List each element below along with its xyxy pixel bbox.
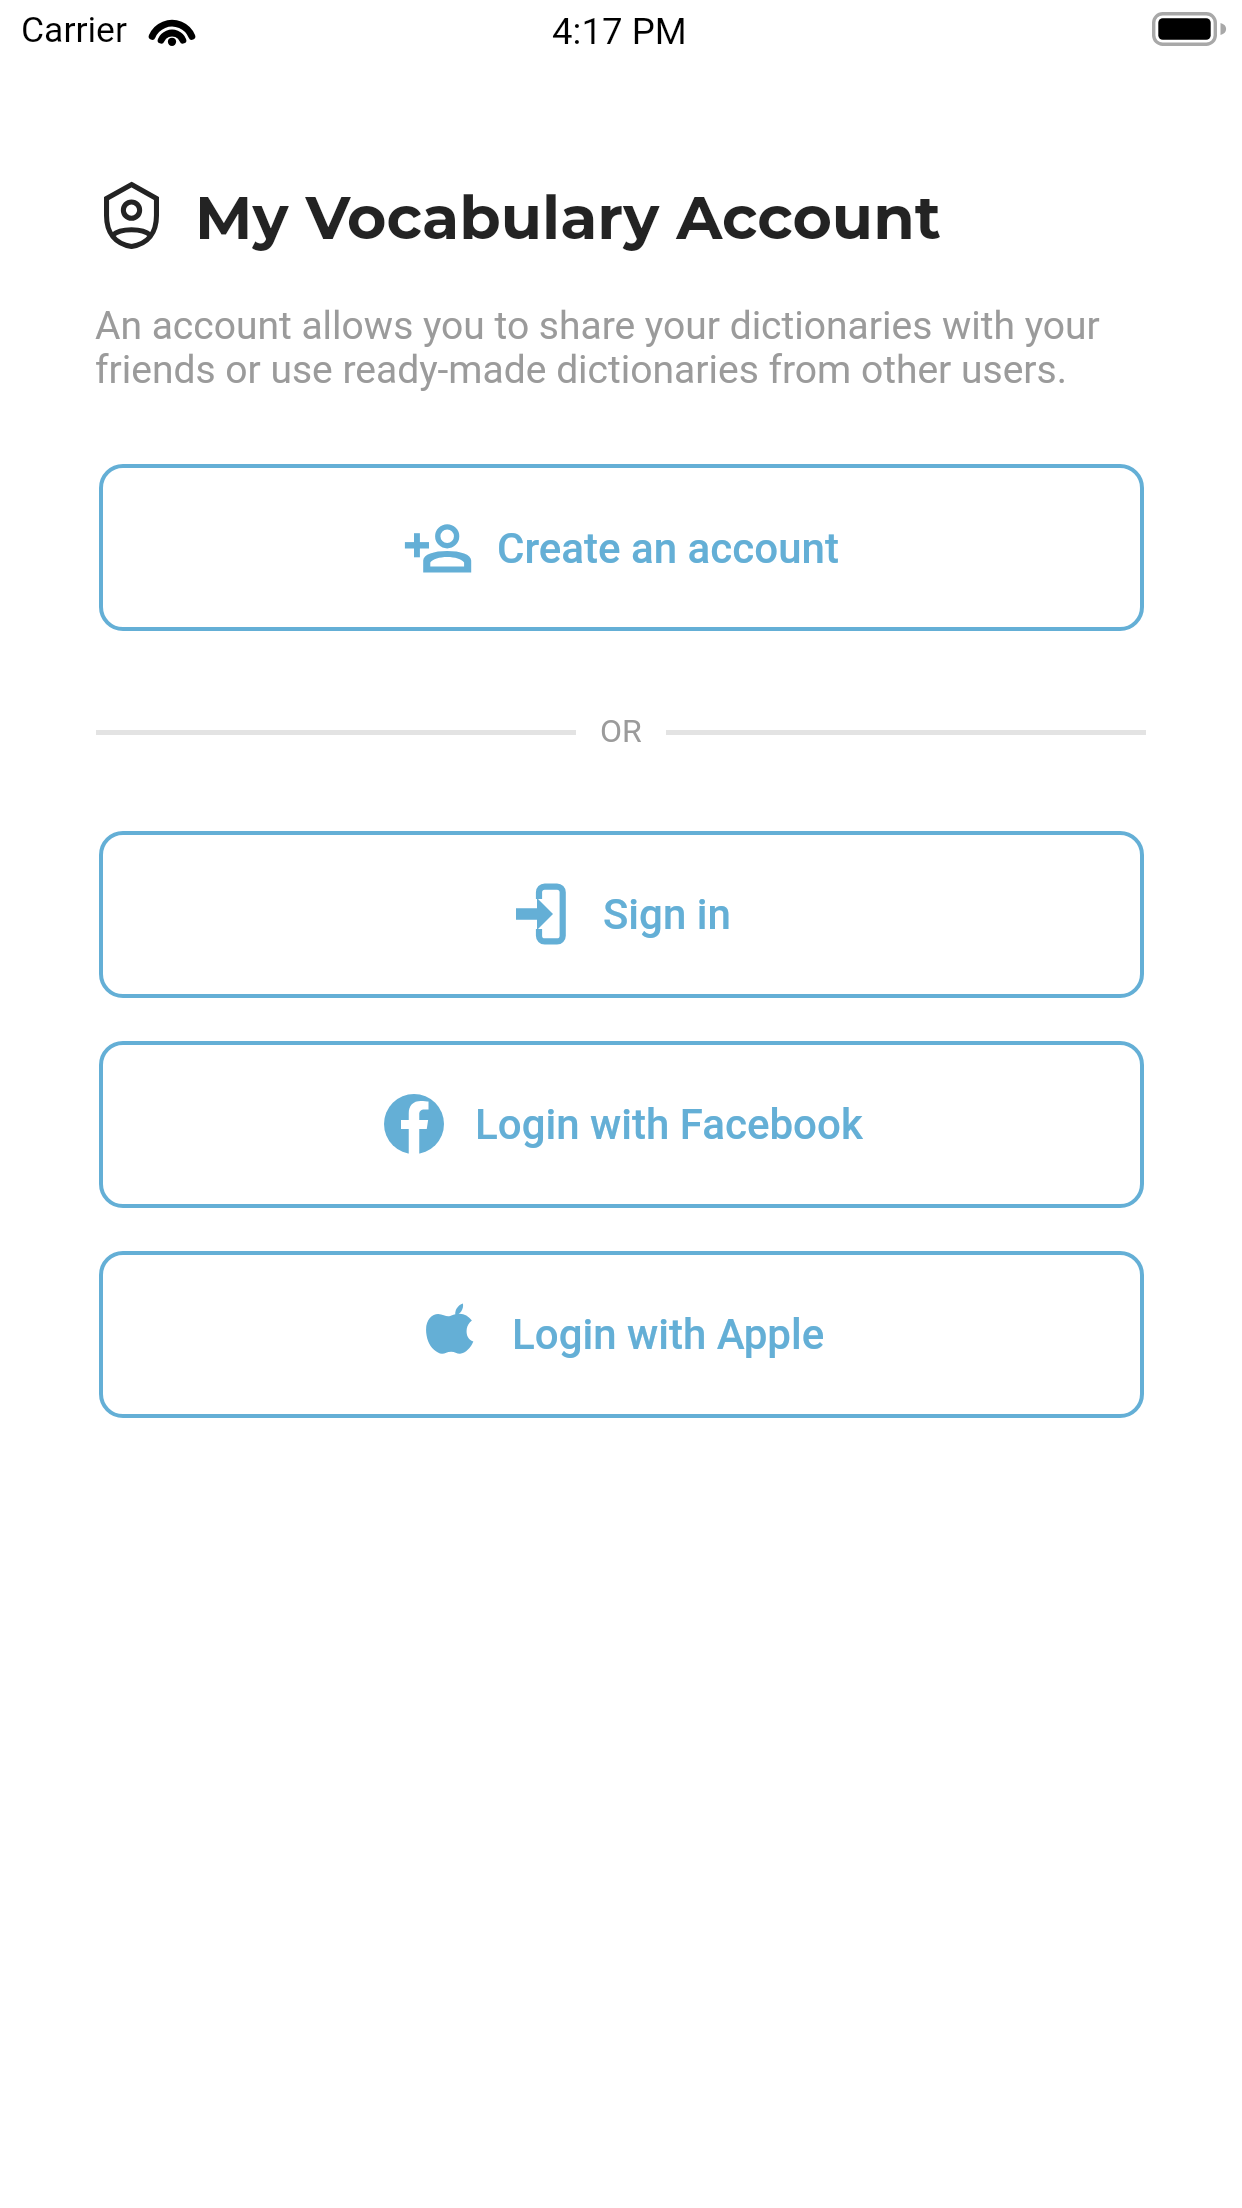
staticText: My Vocabulary Account <box>195 181 941 254</box>
button[interactable] <box>99 464 1144 631</box>
other: Wi-Fi <box>147 11 197 47</box>
staticText: An account allows you to share your dict… <box>95 303 1147 393</box>
button[interactable] <box>99 1251 1144 1418</box>
button[interactable] <box>99 831 1144 998</box>
staticText: OR <box>600 712 642 750</box>
staticText: Sign in <box>603 890 731 939</box>
staticText: Carrier <box>21 9 127 51</box>
staticText: 4:17 PM <box>552 10 687 53</box>
staticText: Create an account <box>497 524 839 573</box>
staticText: Login with Facebook <box>475 1100 863 1149</box>
button[interactable] <box>99 1041 1144 1208</box>
other: Battery <box>1152 11 1228 47</box>
staticText: Login with Apple <box>512 1310 825 1359</box>
